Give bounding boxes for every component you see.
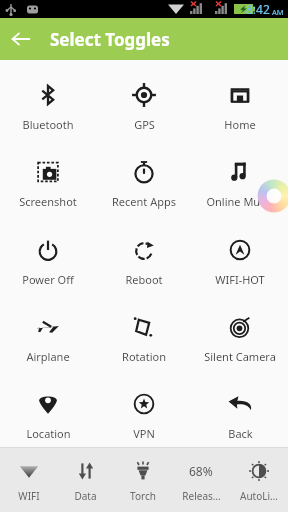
staticText: Home bbox=[224, 117, 256, 132]
staticText: Select Toggles bbox=[50, 28, 170, 51]
button[interactable]: AutoLi… bbox=[230, 448, 288, 512]
staticText: GPS bbox=[134, 117, 155, 132]
staticText: Bluetooth bbox=[22, 117, 74, 132]
staticText: Location bbox=[26, 426, 71, 441]
button[interactable]: Online Music bbox=[192, 138, 288, 216]
staticText: Reboot bbox=[125, 272, 163, 287]
button[interactable]: Bluetooth bbox=[0, 60, 96, 138]
button[interactable]: 68% bbox=[172, 448, 230, 512]
staticText: Power Off bbox=[22, 272, 74, 287]
staticText: Screenshot bbox=[19, 194, 77, 209]
staticText: VPN bbox=[133, 426, 155, 441]
button[interactable]: WIFI-HOT bbox=[192, 216, 288, 293]
button[interactable]: Torch bbox=[114, 448, 172, 512]
staticText: Online Music bbox=[206, 194, 274, 209]
button[interactable]: Home bbox=[192, 60, 288, 138]
staticText: Torch bbox=[130, 489, 156, 503]
button[interactable]: Location bbox=[0, 370, 96, 447]
staticText: Rotation bbox=[122, 349, 166, 364]
button[interactable]: Airplane bbox=[0, 293, 96, 370]
staticText: WIFI bbox=[18, 489, 40, 503]
button[interactable]: Silent Camera bbox=[192, 293, 288, 370]
button[interactable]: Screenshot bbox=[0, 138, 96, 216]
button[interactable]: VPN bbox=[96, 370, 192, 447]
staticText: WIFI-HOT bbox=[215, 272, 265, 287]
button[interactable]: Rotation bbox=[96, 293, 192, 370]
staticText: Data bbox=[74, 489, 97, 503]
button[interactable]: Back bbox=[192, 370, 288, 447]
button[interactable]: Power Off bbox=[0, 216, 96, 293]
staticText: Recent Apps bbox=[112, 194, 176, 209]
staticText: 68% bbox=[189, 463, 213, 479]
button[interactable]: Back bbox=[0, 18, 42, 60]
staticText: Back bbox=[228, 426, 253, 441]
staticText: AutoLi… bbox=[240, 489, 278, 503]
button[interactable]: WIFI bbox=[0, 448, 57, 512]
staticText: Silent Camera bbox=[204, 349, 276, 364]
staticText: Airplane bbox=[26, 349, 70, 364]
button[interactable]: GPS bbox=[96, 60, 192, 138]
button[interactable]: Recent Apps bbox=[96, 138, 192, 216]
button[interactable]: Data bbox=[57, 448, 114, 512]
button[interactable]: Reboot bbox=[96, 216, 192, 293]
staticText: Releas… bbox=[182, 489, 221, 503]
staticText: AM bbox=[272, 7, 284, 17]
staticText: 8:42 bbox=[246, 1, 270, 17]
